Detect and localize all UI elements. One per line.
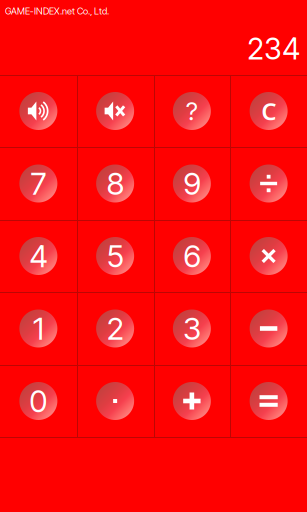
button[interactable]: 8 (77, 147, 154, 220)
button[interactable]: Equals (230, 365, 307, 437)
staticText: 8 (107, 165, 124, 202)
button[interactable]: 7 (0, 147, 77, 220)
button[interactable]: 0 (0, 365, 77, 437)
staticText: ? (186, 96, 198, 126)
button[interactable]: Plus (153, 365, 230, 437)
button[interactable]: Help (153, 75, 230, 147)
staticText: GAME-INDEX.net Co., Ltd. (5, 5, 109, 17)
staticText: 2 (107, 310, 124, 347)
button[interactable]: 9 (153, 147, 230, 220)
staticText: 7 (30, 165, 46, 202)
staticText: 4 (29, 237, 47, 274)
button[interactable]: 1 (0, 292, 77, 365)
staticText: 0 (29, 382, 47, 419)
button[interactable]: Divide (230, 147, 307, 220)
staticText: 9 (183, 165, 200, 202)
button[interactable]: 2 (77, 292, 154, 365)
button[interactable]: 5 (77, 220, 154, 292)
staticText: 234 (247, 31, 300, 67)
button[interactable]: Multiply (230, 220, 307, 292)
button[interactable]: Clear (230, 75, 307, 147)
staticText: 1 (33, 310, 44, 347)
button[interactable]: Minus (230, 292, 307, 365)
staticText: 6 (183, 237, 200, 274)
button[interactable]: Decimal point (77, 365, 154, 437)
button[interactable]: 3 (153, 292, 230, 365)
staticText: C (261, 95, 276, 127)
button[interactable]: 4 (0, 220, 77, 292)
staticText: 3 (183, 310, 201, 347)
staticText: 5 (107, 237, 124, 274)
button[interactable]: Mute (77, 75, 154, 147)
button[interactable]: 6 (153, 220, 230, 292)
button[interactable]: Sound on (0, 75, 77, 147)
